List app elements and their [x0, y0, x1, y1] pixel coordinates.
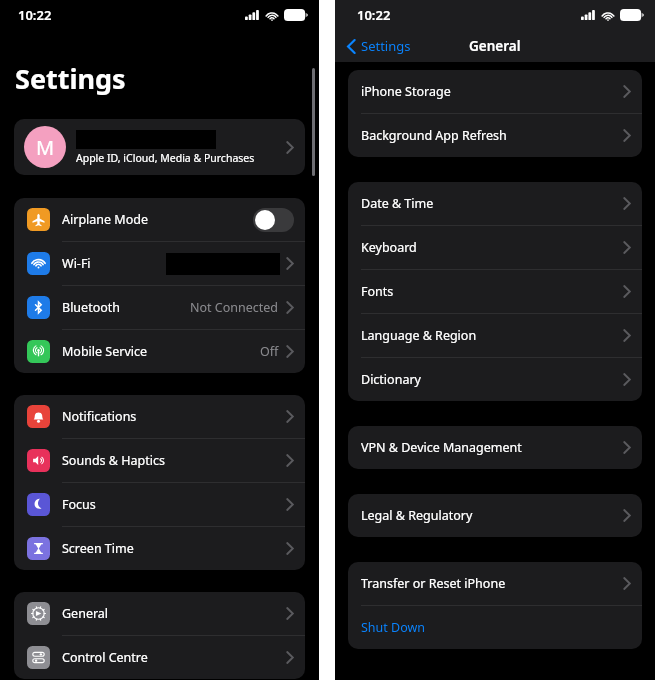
- button[interactable]: Back: [335, 33, 419, 59]
- other: General: [31, 606, 46, 621]
- button[interactable]: Mobile Service: [14, 330, 305, 373]
- staticText: Transfer or Reset iPhone: [361, 575, 506, 592]
- staticText: Background App Refresh: [361, 127, 507, 144]
- staticText: Sounds & Haptics: [62, 452, 165, 469]
- staticText: Bluetooth: [62, 299, 121, 316]
- other: Wi-Fi: [31, 256, 46, 271]
- staticText: Mobile Service: [62, 343, 148, 360]
- button[interactable]: iPhone Storage: [348, 70, 642, 113]
- other: Screen Time: [31, 541, 46, 556]
- staticText: VPN & Device Management: [361, 439, 522, 456]
- staticText: Screen Time: [62, 540, 134, 557]
- other: Control Centre: [31, 650, 46, 665]
- staticText: Airplane Mode: [62, 211, 148, 228]
- other: Bluetooth: [31, 300, 46, 315]
- button[interactable]: Legal & Regulatory: [348, 494, 642, 537]
- staticText: Legal & Regulatory: [361, 507, 473, 524]
- staticText: 10:22: [18, 6, 52, 24]
- button[interactable]: Language & Region: [348, 314, 642, 357]
- staticText: Wi-Fi: [62, 255, 91, 272]
- button[interactable]: Wi-Fi: [14, 242, 305, 285]
- staticText: Language & Region: [361, 327, 477, 344]
- button[interactable]: Date & Time: [348, 182, 642, 225]
- staticText: Fonts: [361, 283, 394, 300]
- staticText: Settings: [361, 37, 411, 55]
- button[interactable]: Background App Refresh: [348, 114, 642, 157]
- staticText: M: [36, 134, 55, 161]
- staticText: Date & Time: [361, 195, 434, 212]
- button[interactable]: Screen Time: [14, 527, 305, 570]
- button[interactable]: Fonts: [348, 270, 642, 313]
- other: Sounds: [31, 453, 46, 468]
- button[interactable]: Sounds: [14, 439, 305, 482]
- other: Back: [347, 39, 356, 54]
- button[interactable]: Transfer or Reset iPhone: [348, 562, 642, 605]
- staticText: Shut Down: [361, 619, 426, 636]
- staticText: Notifications: [62, 408, 137, 425]
- staticText: Control Centre: [62, 649, 148, 666]
- button[interactable]: Airplane Mode toggle: [253, 208, 294, 232]
- button[interactable]: Keyboard: [348, 226, 642, 269]
- button[interactable]: Bluetooth: [14, 286, 305, 329]
- staticText: Settings: [15, 60, 126, 97]
- other: Mobile Service: [31, 344, 46, 359]
- button[interactable]: Shut Down: [348, 606, 642, 649]
- button[interactable]: Airplane Mode: [14, 198, 305, 241]
- other: Notifications: [31, 409, 46, 424]
- staticText: Dictionary: [361, 371, 421, 388]
- button[interactable]: Focus: [14, 483, 305, 526]
- staticText: 10:22: [357, 6, 391, 24]
- button[interactable]: General: [14, 592, 305, 635]
- button[interactable]: Notifications: [14, 395, 305, 438]
- staticText: Keyboard: [361, 239, 417, 256]
- staticText: Not Connected: [190, 299, 279, 316]
- other: Focus: [31, 497, 46, 512]
- staticText: General: [62, 605, 109, 622]
- staticText: iPhone Storage: [361, 83, 451, 100]
- staticText: Focus: [62, 496, 96, 513]
- button[interactable]: Dictionary: [348, 358, 642, 401]
- button[interactable]: Control Centre: [14, 636, 305, 679]
- button[interactable]: VPN & Device Management: [348, 426, 642, 469]
- other: Airplane Mode: [31, 212, 46, 227]
- button[interactable]: M: [14, 119, 305, 175]
- staticText: General: [469, 37, 521, 55]
- staticText: Apple ID, iCloud, Media & Purchases: [76, 151, 255, 165]
- staticText: Off: [260, 343, 279, 360]
